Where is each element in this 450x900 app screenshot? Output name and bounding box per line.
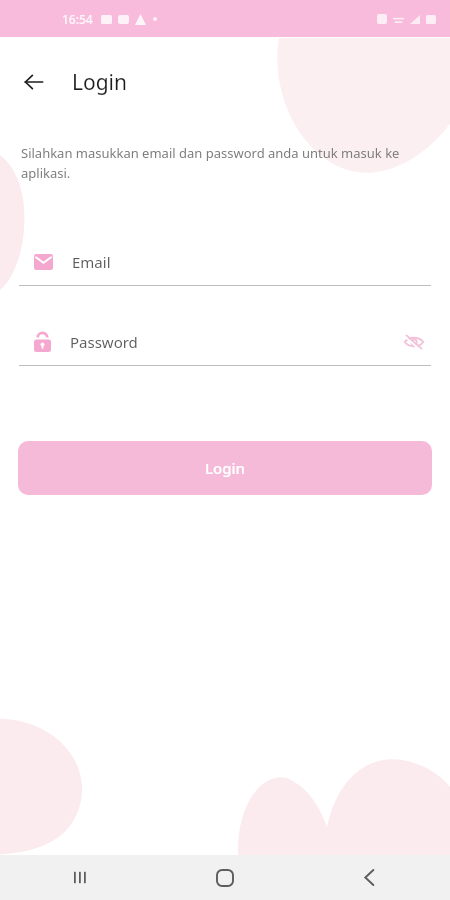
- staticText: Password: [70, 332, 138, 352]
- staticText: Login: [205, 458, 245, 478]
- button[interactable]: Back: [297, 855, 442, 900]
- staticText: Silahkan masukkan email dan password and…: [21, 144, 414, 182]
- button[interactable]: Home: [152, 855, 297, 900]
- button[interactable]: Show password: [397, 325, 431, 359]
- staticText: 16:54: [62, 11, 93, 27]
- staticText: Email: [72, 252, 111, 272]
- button[interactable]: Password: [19, 319, 431, 366]
- button[interactable]: Login: [18, 441, 432, 495]
- button[interactable]: Email: [19, 239, 431, 286]
- button[interactable]: Recent apps: [8, 855, 152, 900]
- staticText: Login: [72, 68, 128, 97]
- button[interactable]: Back: [16, 64, 52, 100]
